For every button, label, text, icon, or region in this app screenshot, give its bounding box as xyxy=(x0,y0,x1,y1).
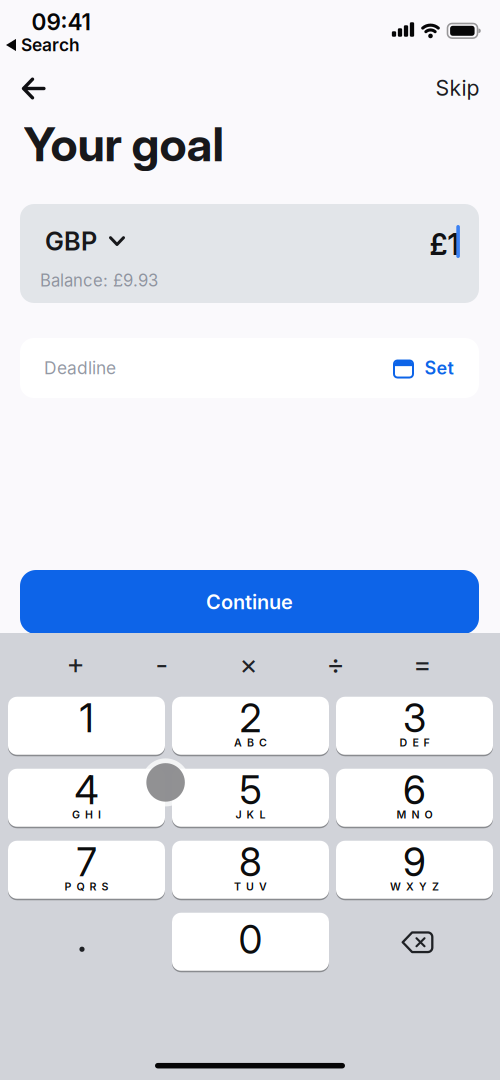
button[interactable]: 2 xyxy=(172,697,329,756)
staticText: A B C xyxy=(234,736,267,749)
staticText: Set xyxy=(424,357,453,379)
staticText: P Q R S xyxy=(64,880,108,893)
staticText: G H I xyxy=(72,808,101,821)
staticText: 0 xyxy=(238,916,262,963)
button[interactable]: Multiply xyxy=(221,645,277,683)
button[interactable]: Currency GBP xyxy=(45,226,125,257)
staticText: + xyxy=(66,647,84,681)
staticText: GBP xyxy=(45,226,97,257)
staticText: T U V xyxy=(234,880,267,893)
staticText: Search xyxy=(21,34,80,55)
staticText: 3 xyxy=(403,695,426,742)
button[interactable]: Delete xyxy=(336,913,493,972)
staticText: × xyxy=(240,647,258,681)
button[interactable]: 8 xyxy=(172,841,329,900)
staticText: 2 xyxy=(239,695,261,742)
staticText: - xyxy=(155,647,168,681)
button[interactable]: 6 xyxy=(336,769,493,828)
staticText: J K L xyxy=(235,808,265,821)
staticText: 9 xyxy=(403,839,426,886)
button[interactable]: 0 xyxy=(172,913,329,972)
staticText: 09:41 xyxy=(31,8,90,36)
button[interactable]: Skip xyxy=(429,69,485,107)
staticText: £1 xyxy=(429,227,459,262)
button[interactable]: 7 xyxy=(8,841,165,900)
button[interactable]: 1 xyxy=(8,697,165,756)
button[interactable]: Search xyxy=(6,34,80,55)
button[interactable]: 9 xyxy=(336,841,493,900)
staticText: 1 xyxy=(79,695,93,742)
button[interactable]: 4 xyxy=(8,769,165,828)
staticText: 6 xyxy=(403,767,426,814)
staticText: Deadline xyxy=(44,357,116,378)
staticText: 5 xyxy=(239,767,261,814)
staticText: Skip xyxy=(435,75,479,101)
button[interactable]: 5 xyxy=(172,769,329,828)
staticText: Your goal xyxy=(23,116,223,172)
button[interactable]: Divide xyxy=(307,645,363,683)
staticText: D E F xyxy=(399,736,429,749)
button[interactable]: Equals xyxy=(394,645,450,683)
staticText: W X Y Z xyxy=(390,880,439,893)
staticText: 8 xyxy=(239,839,262,886)
staticText: Continue xyxy=(206,590,293,614)
button[interactable]: Plus xyxy=(47,645,103,683)
button[interactable]: Back xyxy=(14,70,54,107)
staticText: ÷ xyxy=(326,647,344,681)
button[interactable]: Continue xyxy=(20,570,479,634)
staticText: 7 xyxy=(76,839,96,886)
button[interactable]: 3 xyxy=(336,697,493,756)
button[interactable]: Deadline xyxy=(20,338,479,398)
staticText: Balance: £9.93 xyxy=(40,270,158,290)
button[interactable]: Decimal point xyxy=(8,913,165,972)
staticText: 4 xyxy=(74,767,98,814)
staticText: = xyxy=(413,647,431,681)
staticText: M N O xyxy=(396,808,432,821)
button[interactable]: Minus xyxy=(134,645,190,683)
